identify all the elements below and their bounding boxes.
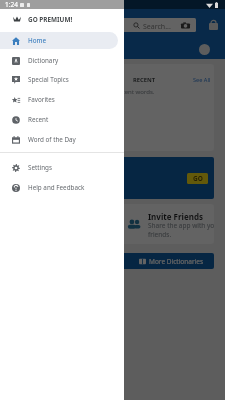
staticText: Share the app with your — [148, 221, 214, 230]
staticText: Recent — [28, 115, 49, 124]
button[interactable]: Word of the Day — [0, 131, 118, 148]
staticText: Invite Friends — [148, 211, 204, 222]
button[interactable]: Recent — [0, 111, 118, 128]
button[interactable]: Shop — [205, 17, 221, 33]
button[interactable]: Home — [0, 32, 118, 49]
button[interactable]: GO PREMIUM! — [0, 12, 124, 26]
staticText: Special Topics — [28, 75, 69, 84]
staticText: Search... — [143, 22, 171, 32]
staticText: Favorites — [28, 95, 55, 104]
button[interactable]: See All — [193, 76, 211, 84]
button[interactable]: Profile — [199, 44, 210, 55]
staticText: See your recent words. — [108, 88, 155, 96]
staticText: Home — [28, 36, 47, 45]
staticText: 1:24 — [5, 0, 18, 9]
staticText: Word of the Day — [28, 135, 76, 144]
staticText: Settings — [28, 163, 52, 172]
staticText: More Dictionaries — [149, 257, 204, 266]
button[interactable]: Dictionary — [0, 52, 118, 69]
button[interactable]: Settings — [0, 159, 118, 176]
staticText: friends. — [148, 230, 172, 239]
button[interactable]: Favorites — [0, 91, 118, 108]
button[interactable]: Search... — [108, 18, 196, 32]
staticText: Help and Feedback — [28, 183, 85, 192]
button[interactable]: Special Topics — [0, 71, 118, 88]
button[interactable]: More Dictionaries — [108, 253, 214, 269]
staticText: Dictionary — [28, 56, 59, 65]
staticText: GO PREMIUM! — [28, 15, 73, 24]
button[interactable]: Help and Feedback — [0, 179, 118, 196]
button[interactable]: GO — [187, 173, 208, 184]
staticText: RECENT — [133, 76, 156, 84]
staticText: GO — [193, 174, 203, 183]
